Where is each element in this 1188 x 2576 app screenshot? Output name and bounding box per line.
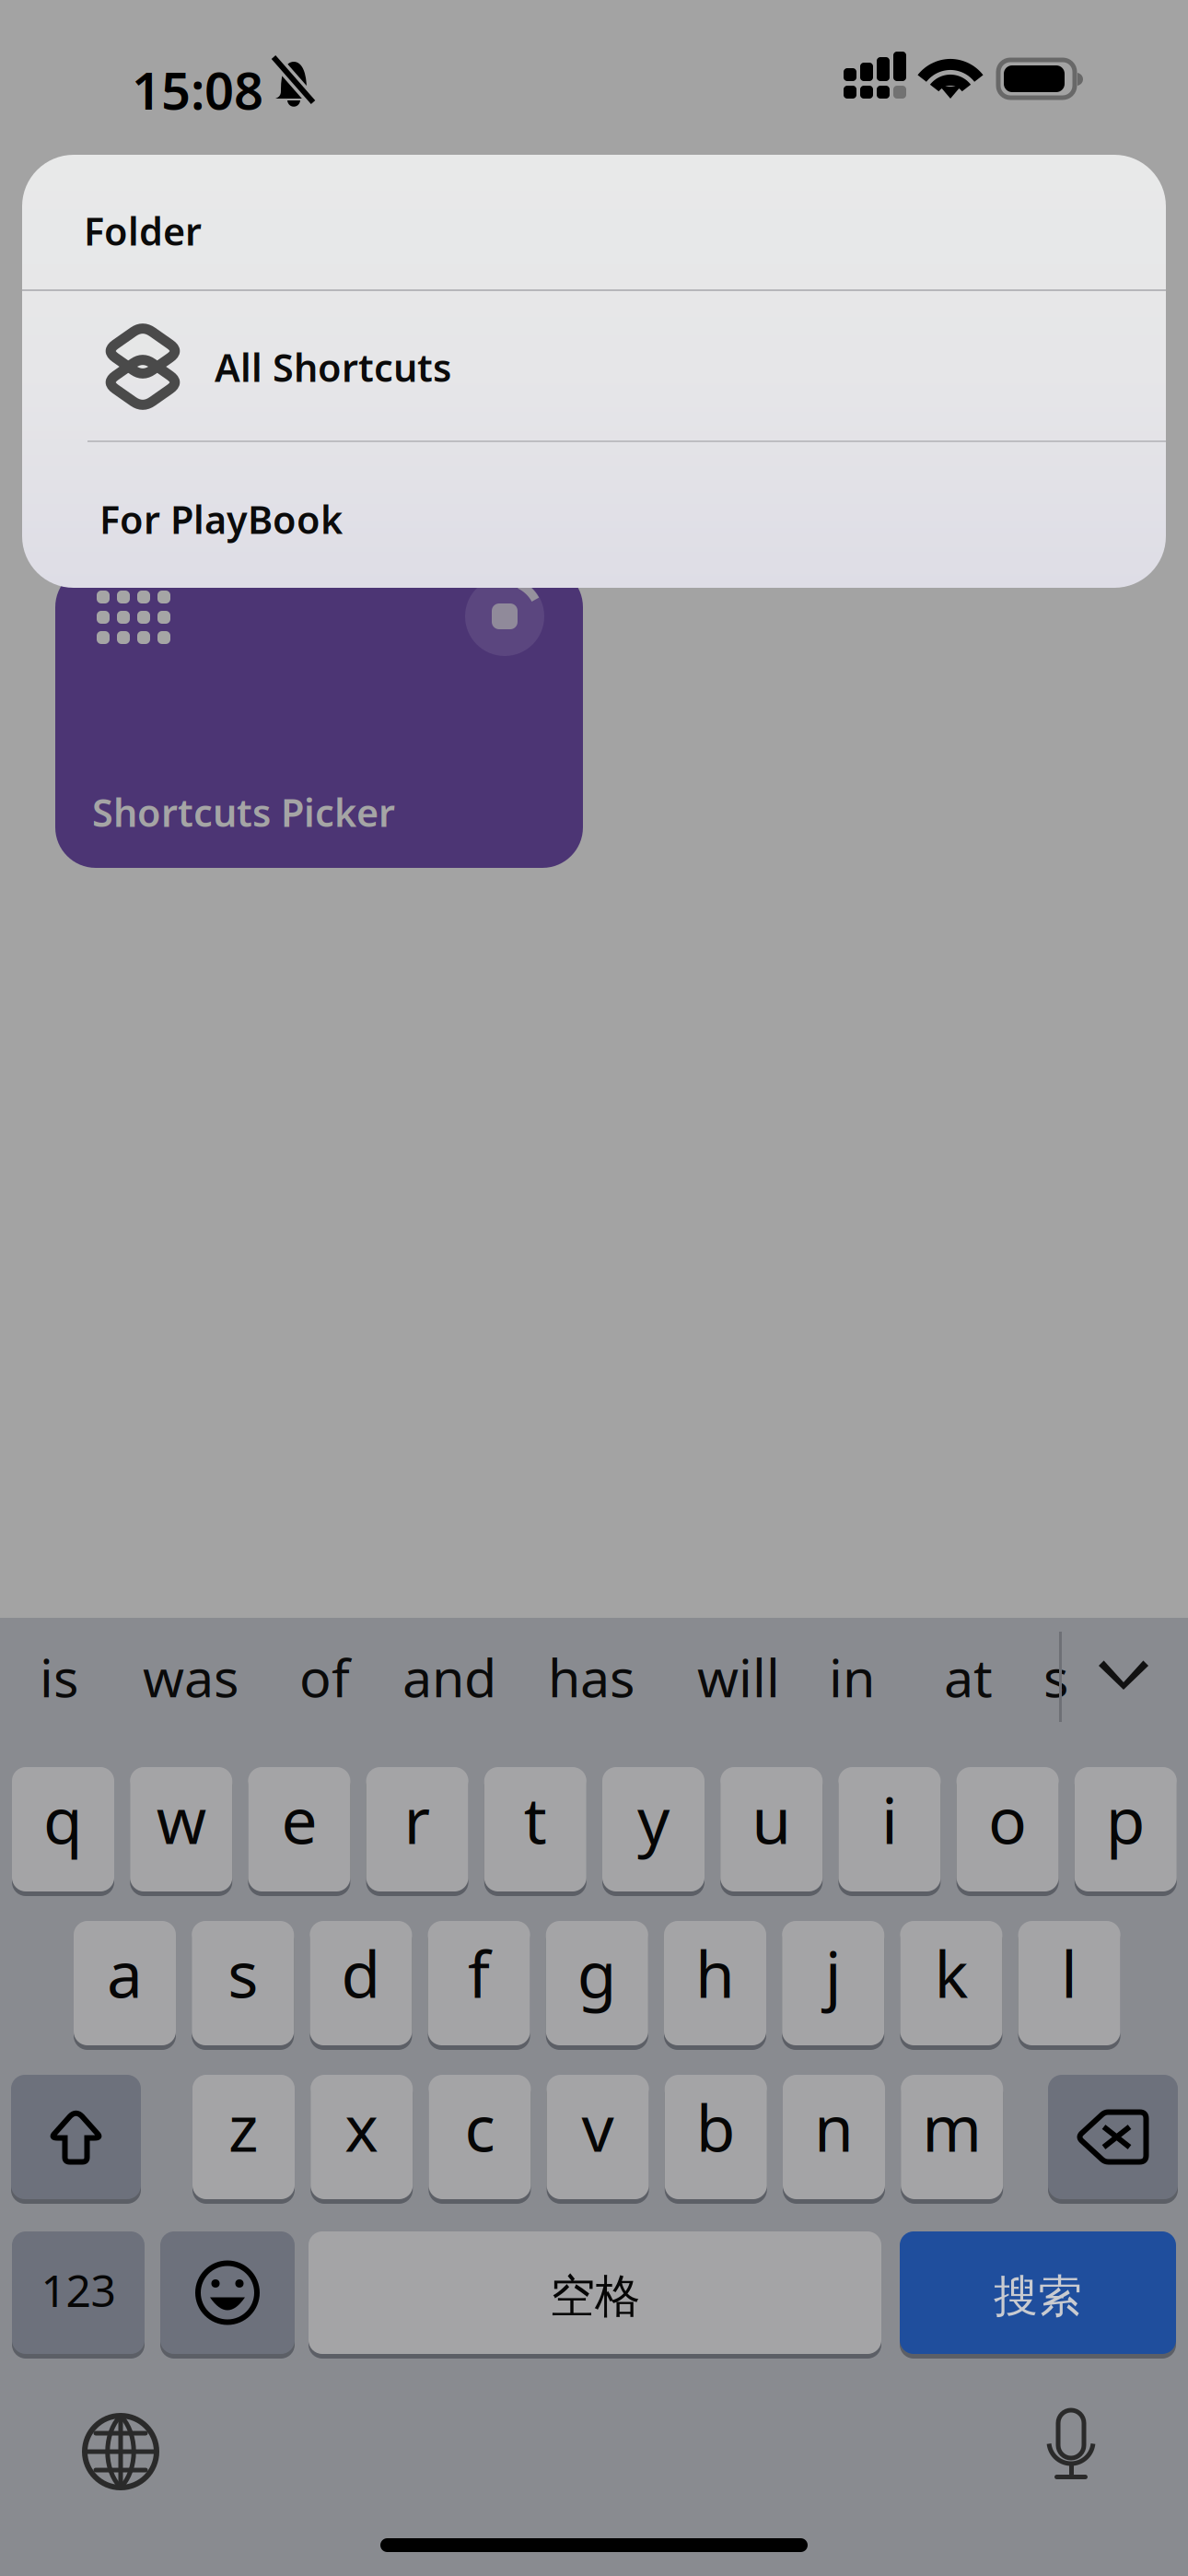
staticText: m (922, 2084, 982, 2169)
button[interactable]: of (299, 1618, 350, 1736)
button[interactable]: h (664, 1921, 766, 2050)
button[interactable]: l (1018, 1921, 1120, 2050)
button[interactable]: x (311, 2075, 413, 2204)
button[interactable]: g (546, 1921, 648, 2050)
button[interactable]: j (782, 1921, 884, 2050)
staticText: of (299, 1642, 350, 1712)
staticText: s (1043, 1642, 1068, 1712)
button[interactable]: z (192, 2075, 295, 2204)
staticText: x (345, 2084, 379, 2169)
staticText: in (829, 1642, 875, 1712)
staticText: e (281, 1777, 317, 1862)
staticText: o (988, 1777, 1027, 1862)
staticText: r (404, 1777, 431, 1862)
staticText: d (341, 1931, 381, 2015)
button[interactable]: r (366, 1767, 468, 1896)
button[interactable]: in (829, 1618, 875, 1736)
staticText: c (465, 2084, 495, 2169)
staticText: p (1106, 1777, 1145, 1862)
staticText: z (228, 2084, 259, 2169)
button[interactable]: Hide predictions (1096, 1618, 1151, 1736)
staticText: 123 (41, 2261, 116, 2319)
button[interactable]: Shortcuts Picker (55, 567, 583, 868)
staticText: at (944, 1642, 993, 1712)
button[interactable]: t (484, 1767, 586, 1896)
button[interactable]: a (74, 1921, 176, 2050)
staticText: v (582, 2084, 614, 2169)
button[interactable]: u (720, 1767, 823, 1896)
staticText: will (697, 1642, 780, 1712)
staticText: b (696, 2084, 736, 2169)
staticText: n (814, 2084, 854, 2169)
staticText: 15:08 (132, 55, 263, 124)
button[interactable]: Shift (11, 2075, 141, 2204)
staticText: i (881, 1777, 898, 1862)
button[interactable]: will (697, 1618, 780, 1736)
staticText: w (156, 1777, 206, 1862)
button[interactable]: Next keyboard (61, 2396, 181, 2507)
button[interactable]: is (40, 1618, 78, 1736)
button[interactable]: 123 (12, 2231, 145, 2359)
button[interactable]: c (429, 2075, 531, 2204)
staticText: h (695, 1931, 735, 2015)
staticText: 搜索 (994, 2269, 1082, 2324)
staticText: j (825, 1931, 841, 2015)
staticText: Shortcuts Picker (92, 787, 395, 837)
button[interactable]: and (402, 1618, 496, 1736)
staticText: q (43, 1777, 83, 1862)
button[interactable]: v (547, 2075, 649, 2204)
staticText: All Shortcuts (215, 342, 451, 392)
button[interactable]: 空格 (309, 2231, 881, 2359)
button[interactable]: at (944, 1618, 993, 1736)
button[interactable]: e (248, 1767, 350, 1896)
button[interactable]: n (783, 2075, 885, 2204)
button[interactable]: s (1043, 1618, 1068, 1736)
button[interactable]: b (665, 2075, 767, 2204)
button[interactable]: m (901, 2075, 1003, 2204)
button[interactable]: w (130, 1767, 232, 1896)
button[interactable]: k (900, 1921, 1002, 2050)
staticText: t (524, 1777, 547, 1862)
button[interactable]: Dictation (1013, 2392, 1133, 2502)
staticText: is (40, 1642, 78, 1712)
staticText: Folder (84, 205, 202, 256)
button[interactable]: Delete (1048, 2075, 1178, 2204)
staticText: u (752, 1777, 791, 1862)
button[interactable]: 搜索 (900, 2231, 1176, 2359)
button[interactable]: f (428, 1921, 530, 2050)
button[interactable]: was (143, 1618, 239, 1736)
button[interactable]: All Shortcuts (22, 291, 1166, 442)
staticText: y (637, 1777, 670, 1862)
staticText: was (143, 1642, 239, 1712)
button[interactable]: q (12, 1767, 114, 1896)
button[interactable]: s (192, 1921, 294, 2050)
staticText: 空格 (550, 2268, 640, 2324)
button[interactable]: p (1075, 1767, 1177, 1896)
staticText: and (402, 1642, 496, 1712)
button[interactable]: i (838, 1767, 941, 1896)
button[interactable]: d (310, 1921, 412, 2050)
staticText: f (468, 1931, 490, 2015)
staticText: s (228, 1931, 258, 2015)
staticText: a (107, 1931, 143, 2015)
staticText: For PlayBook (99, 494, 343, 544)
button[interactable]: o (956, 1767, 1059, 1896)
staticText: l (1061, 1931, 1078, 2015)
button[interactable]: y (602, 1767, 705, 1896)
button[interactable]: Emoji (160, 2231, 295, 2359)
staticText: k (934, 1931, 968, 2015)
staticText: g (577, 1931, 617, 2015)
staticText: has (548, 1642, 635, 1712)
button[interactable]: has (548, 1618, 635, 1736)
button[interactable]: For PlayBook (22, 442, 1166, 588)
